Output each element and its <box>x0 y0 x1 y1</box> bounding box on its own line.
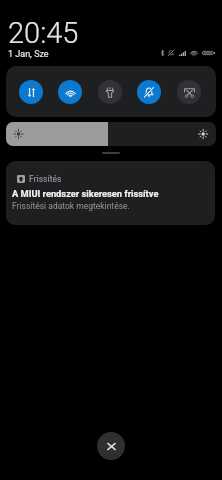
button[interactable]: Brightness <box>6 122 216 146</box>
staticText: Frissítési adatok megtekintése. <box>12 201 130 211</box>
button[interactable]: Close <box>97 432 125 460</box>
staticText: Frissítés <box>29 174 62 184</box>
button[interactable]: Frissítés <box>6 161 215 225</box>
button[interactable]: Screenshot <box>169 66 209 117</box>
button[interactable]: Do not disturb <box>129 66 169 117</box>
staticText: 1 Jan, Sze <box>8 49 49 60</box>
button[interactable]: Wi-Fi <box>50 66 90 117</box>
button[interactable]: Flashlight <box>90 66 130 117</box>
button[interactable]: Mobile data <box>11 66 51 117</box>
staticText: A MIUI rendszer sikeresen frissítve <box>12 188 159 199</box>
staticText: 20:45 <box>8 16 79 50</box>
